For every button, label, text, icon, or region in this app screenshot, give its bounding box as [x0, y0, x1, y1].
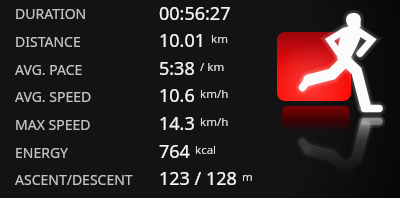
button[interactable]: AVG. SPEED [0, 82, 400, 110]
staticText: 10.6 [159, 83, 195, 108]
staticText: km/h [200, 86, 229, 102]
staticText: 5:38 [159, 56, 195, 81]
staticText: 764 [159, 139, 190, 164]
staticText: 123 / 128 [159, 166, 237, 191]
button[interactable]: AVG. PACE [0, 55, 400, 83]
staticText: / km [200, 59, 225, 75]
staticText: 10.01 [159, 28, 206, 53]
staticText: kcal [195, 142, 217, 158]
staticText: ASCENT/DESCENT [15, 170, 133, 189]
button[interactable]: MAX SPEED [0, 110, 400, 138]
staticText: AVG. PACE [15, 60, 83, 79]
staticText: AVG. SPEED [15, 87, 92, 106]
other: Running activity [0, 0, 400, 198]
button[interactable]: DURATION [0, 0, 400, 27]
staticText: DURATION [15, 4, 87, 23]
staticText: m [242, 169, 253, 185]
staticText: MAX SPEED [15, 115, 91, 134]
staticText: 14.3 [159, 111, 195, 136]
staticText: km/h [200, 114, 229, 130]
staticText: DISTANCE [15, 32, 81, 51]
staticText: km [211, 31, 228, 47]
button[interactable]: ASCENT/DESCENT [0, 165, 400, 193]
button[interactable]: DISTANCE [0, 27, 400, 55]
staticText: 00:56:27 [159, 1, 231, 26]
button[interactable]: ENERGY [0, 138, 400, 166]
staticText: ENERGY [15, 143, 69, 162]
